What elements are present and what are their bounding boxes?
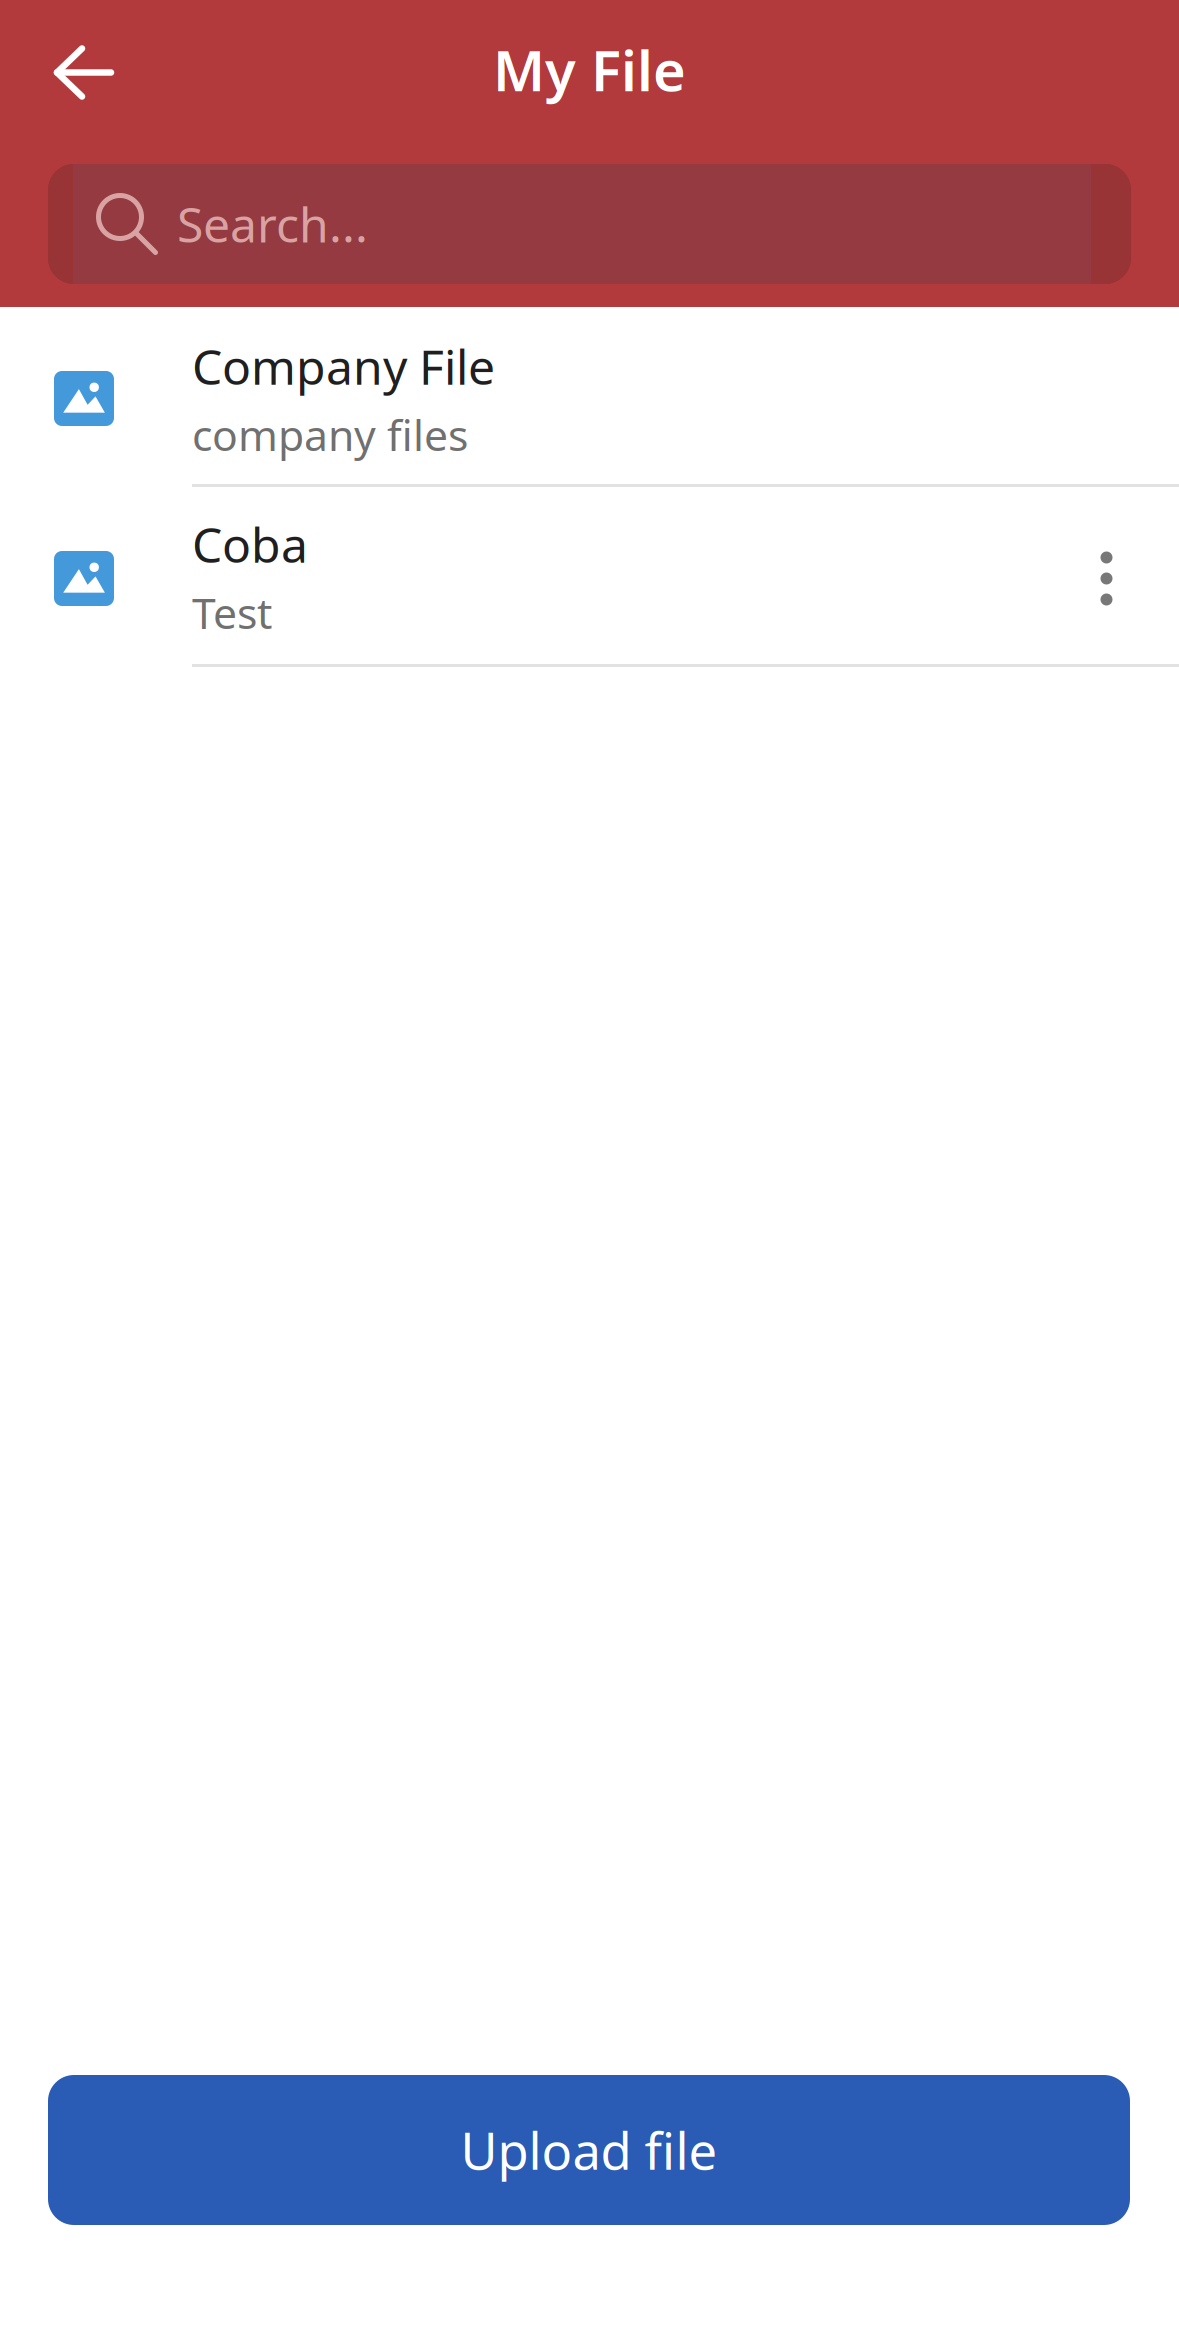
button[interactable]: Upload file: [48, 2075, 1130, 2225]
button[interactable]: Coba: [0, 487, 1034, 664]
button[interactable]: Back: [53, 45, 115, 99]
staticText: Company File: [192, 334, 495, 398]
button[interactable]: Company File: [0, 307, 1034, 484]
staticText: company files: [192, 406, 468, 463]
staticText: Search...: [177, 192, 368, 256]
staticText: Coba: [192, 512, 308, 576]
staticText: Upload file: [460, 2116, 717, 2184]
button[interactable]: More options: [1034, 487, 1179, 664]
button[interactable]: Search...: [48, 164, 1131, 284]
staticText: My File: [493, 32, 686, 107]
staticText: Test: [192, 584, 272, 641]
